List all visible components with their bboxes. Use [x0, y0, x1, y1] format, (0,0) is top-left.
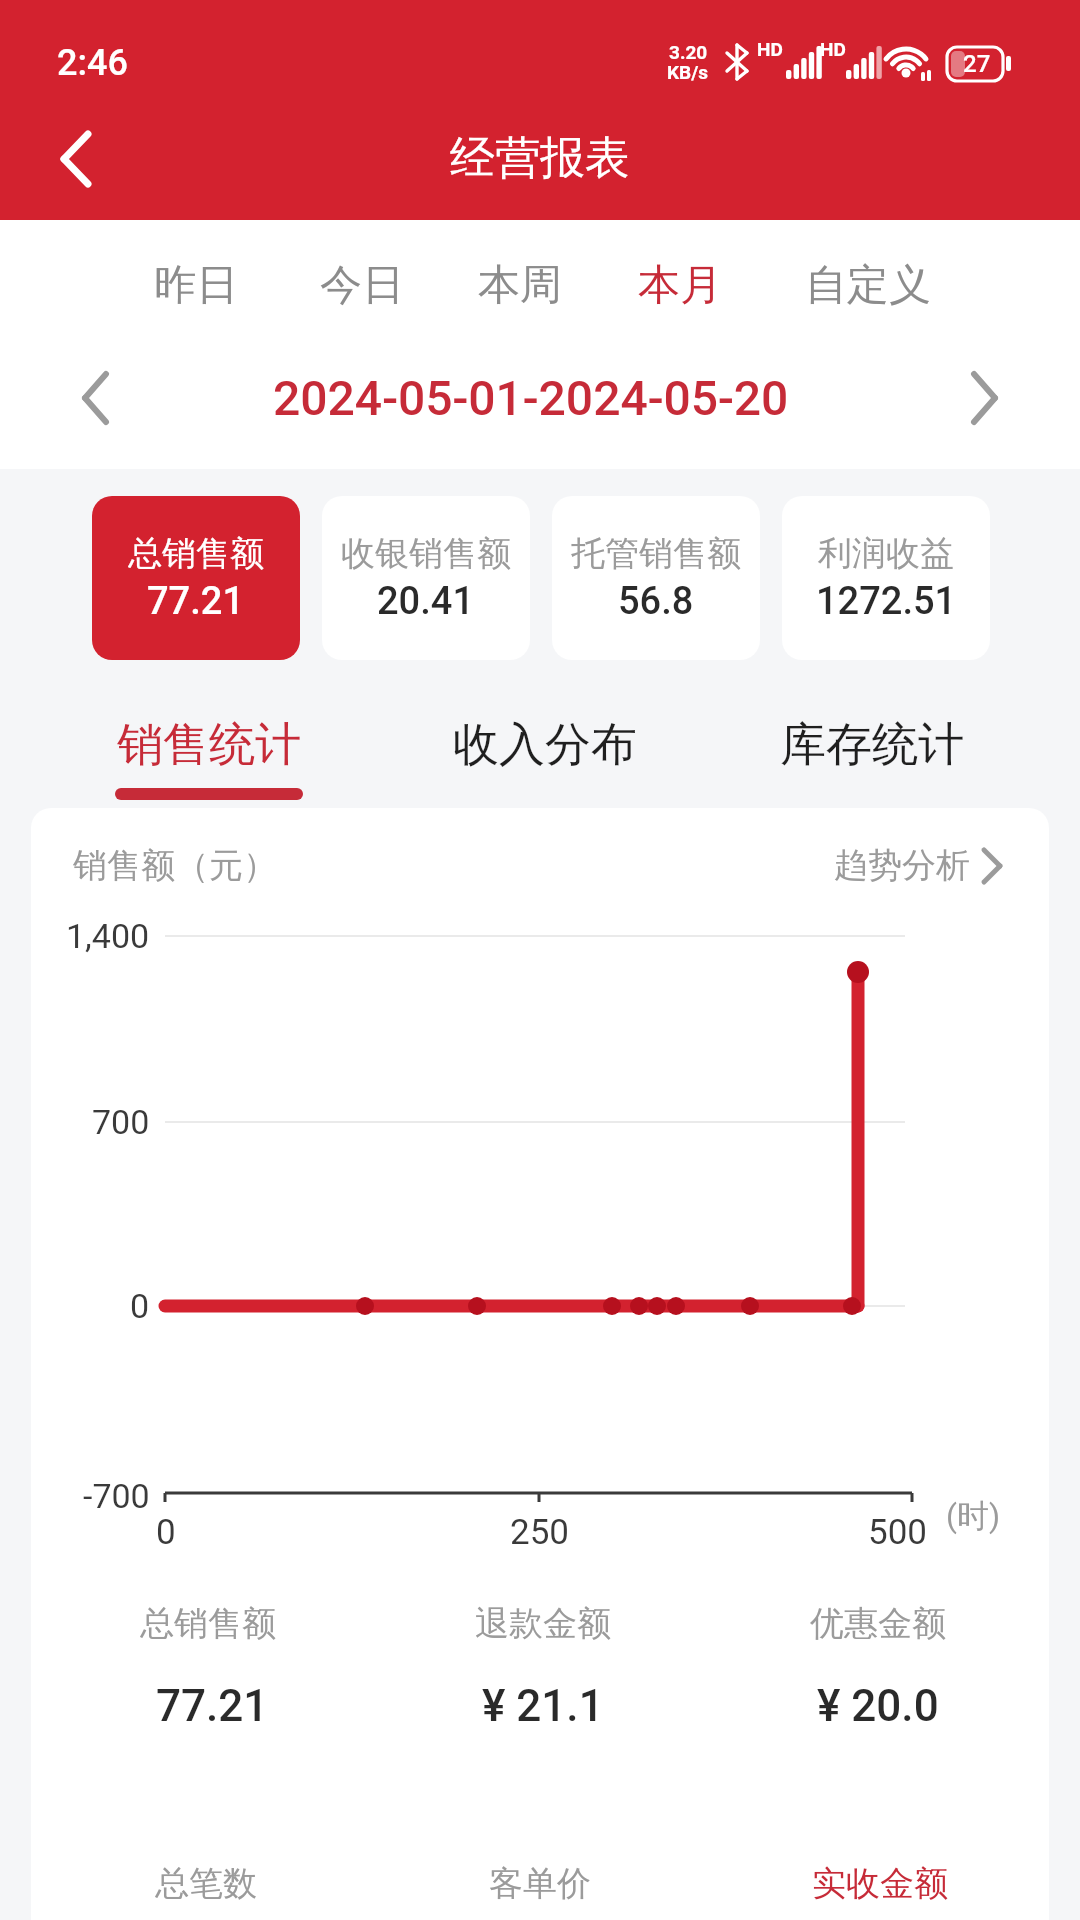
button[interactable]: 经营报表: [390, 123, 690, 193]
staticText: 20.41: [377, 579, 475, 624]
staticText: 退款金额: [475, 1602, 611, 1645]
staticText: HD: [757, 38, 783, 60]
staticText: 库存统计: [780, 716, 964, 774]
button[interactable]: 总销售额: [92, 496, 300, 660]
staticText: 1272.51: [816, 579, 957, 624]
staticText: 自定义: [805, 259, 931, 312]
button[interactable]: 本月: [620, 250, 740, 320]
staticText: 趋势分析: [834, 844, 970, 887]
staticText: 总销售额: [140, 1602, 276, 1645]
button[interactable]: 收银销售额: [322, 496, 530, 660]
button[interactable]: [40, 120, 120, 200]
staticText: 托管销售额: [571, 532, 741, 575]
button[interactable]: 2024-05-01-2024-05-20: [231, 363, 831, 433]
button[interactable]: [60, 360, 140, 440]
staticText: -700: [83, 1476, 150, 1516]
staticText: KB/s: [667, 61, 709, 83]
staticText: 0: [130, 1286, 150, 1326]
staticText: 500: [868, 1512, 928, 1553]
staticText: 250: [510, 1512, 570, 1553]
staticText: 销售统计: [117, 716, 301, 774]
staticText: 销售额（元）: [73, 844, 277, 887]
staticText: 56.8: [618, 579, 694, 624]
button[interactable]: 昨日: [136, 250, 256, 320]
staticText: 客单价: [489, 1862, 591, 1905]
staticText: 昨日: [154, 259, 238, 312]
staticText: 77.21: [156, 1680, 269, 1732]
button[interactable]: 收入分布: [435, 705, 655, 785]
staticText: 0: [156, 1512, 176, 1553]
staticText: 经营报表: [450, 130, 630, 187]
staticText: 77.21: [147, 579, 245, 624]
staticText: 1,400: [66, 916, 150, 956]
button[interactable]: 今日: [302, 250, 422, 320]
button[interactable]: 本周: [460, 250, 580, 320]
staticText: 收入分布: [453, 716, 637, 774]
staticText: ¥ 20.0: [817, 1680, 939, 1732]
button[interactable]: 趋势分析: [792, 835, 1012, 895]
staticText: 2:46: [57, 42, 128, 84]
button[interactable]: 托管销售额: [552, 496, 760, 660]
staticText: HD: [820, 38, 846, 60]
staticText: 27: [963, 50, 991, 78]
staticText: 700: [92, 1102, 150, 1142]
button[interactable]: [940, 360, 1020, 440]
button[interactable]: 利润收益: [782, 496, 990, 660]
staticText: 今日: [320, 259, 404, 312]
staticText: 3.20: [669, 41, 708, 63]
staticText: 本月: [638, 259, 722, 312]
button[interactable]: 自定义: [788, 250, 948, 320]
staticText: (时): [946, 1496, 1001, 1536]
button[interactable]: 销售统计: [99, 705, 319, 785]
button[interactable]: 库存统计: [762, 705, 982, 785]
staticText: 总销售额: [128, 532, 264, 575]
staticText: 2024-05-01-2024-05-20: [273, 370, 789, 426]
staticText: 利润收益: [818, 532, 954, 575]
staticText: 实收金额: [812, 1862, 948, 1905]
staticText: ¥ 21.1: [482, 1680, 604, 1732]
staticText: 本周: [478, 259, 562, 312]
staticText: 优惠金额: [810, 1602, 946, 1645]
staticText: 收银销售额: [341, 532, 511, 575]
staticText: 总笔数: [155, 1862, 257, 1905]
